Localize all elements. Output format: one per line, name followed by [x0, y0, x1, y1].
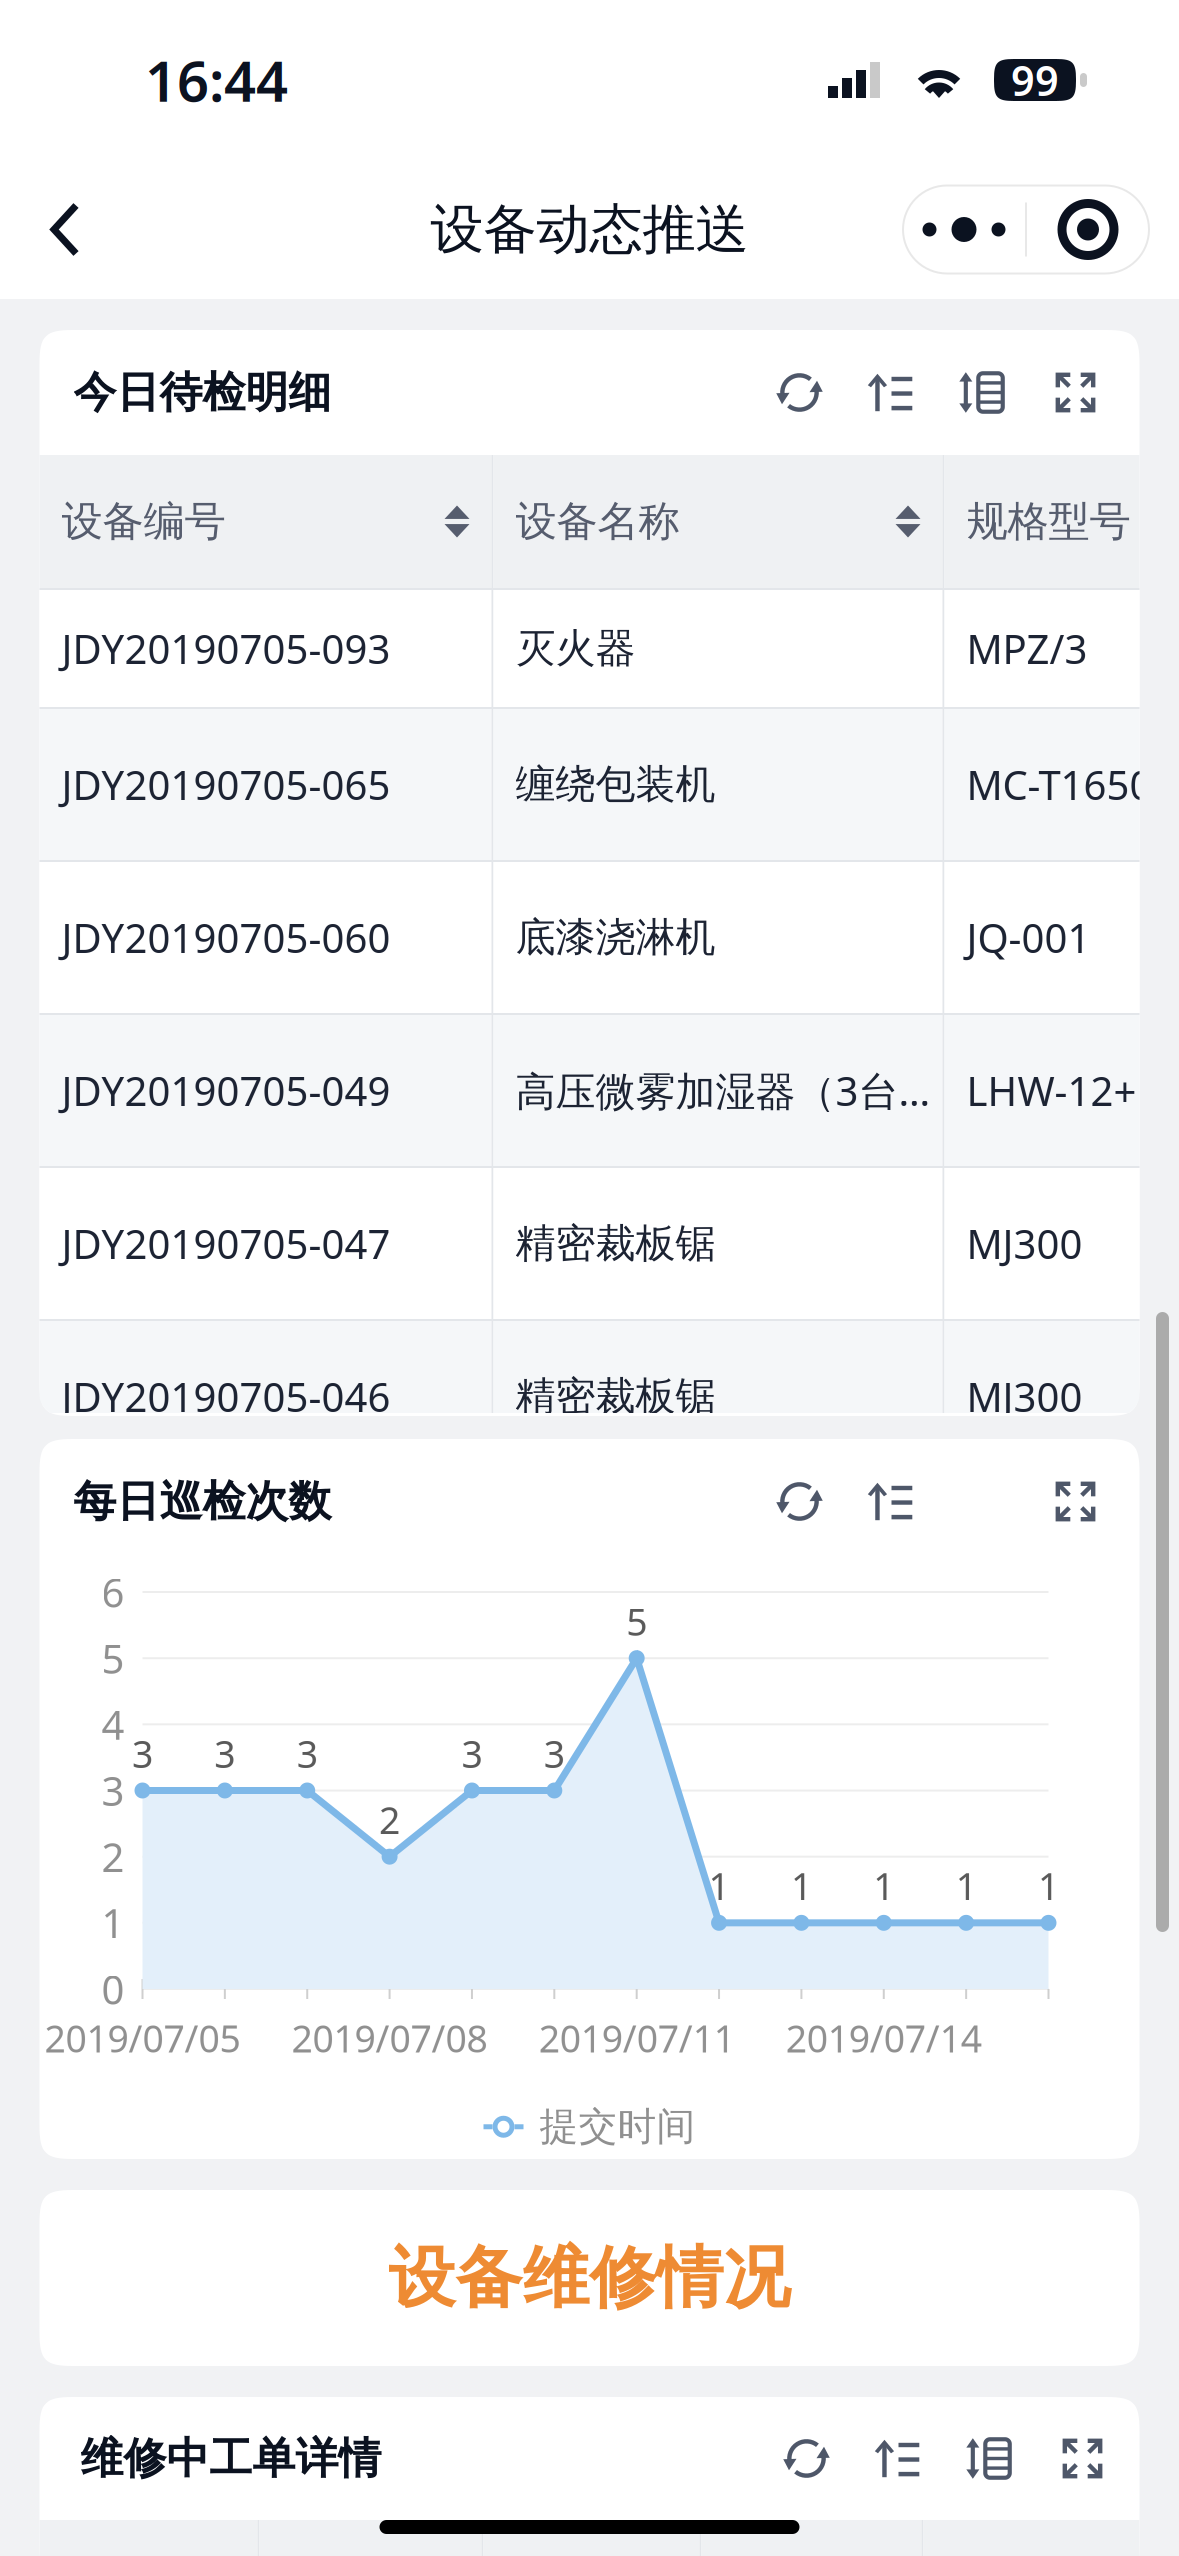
button[interactable]: Full screen — [1036, 2397, 1128, 2520]
staticText: 3 — [132, 1729, 153, 1778]
staticText: 1 — [101, 1896, 124, 1949]
button[interactable]: Refresh — [753, 330, 845, 455]
button[interactable]: Row height — [944, 2397, 1036, 2520]
staticText: 维修中工单详情 — [80, 2432, 381, 2485]
staticText: JQ-001 — [966, 911, 1090, 964]
staticText: JDY20190705-046 — [61, 1370, 390, 1423]
staticText: MPZ/3 — [966, 622, 1087, 675]
staticText: 2019/07/14 — [786, 2013, 982, 2063]
button[interactable]: Sort — [845, 1439, 937, 1564]
staticText: LHW-12+L — [966, 1064, 1157, 1117]
staticText: 16:44 — [145, 43, 288, 117]
staticText: 灭火器 — [515, 624, 635, 673]
button[interactable]: More options — [903, 185, 1025, 273]
staticText: 3 — [544, 1729, 565, 1778]
staticText: 2 — [101, 1830, 124, 1883]
staticText: 每日巡检次数 — [73, 1475, 331, 1528]
staticText: 2019/07/05 — [44, 2013, 240, 2063]
staticText: 1 — [873, 1861, 894, 1911]
staticText: 6 — [101, 1565, 124, 1618]
staticText: 设备动态推送 — [430, 197, 748, 262]
staticText: 提交时间 — [539, 2103, 695, 2150]
staticText: 2019/07/11 — [539, 2013, 735, 2063]
staticText: JDY20190705-047 — [61, 1217, 390, 1270]
staticText: MJ300 — [966, 1370, 1082, 1423]
button[interactable]: Full screen — [1029, 330, 1121, 455]
staticText: 精密裁板锯 — [515, 1219, 715, 1268]
staticText: JDY20190705-065 — [61, 758, 390, 811]
staticText: 2 — [379, 1795, 400, 1844]
staticText: 设备维修情况 — [388, 2237, 790, 2319]
button[interactable]: Refresh — [753, 1439, 845, 1564]
staticText: 3 — [461, 1729, 482, 1778]
staticText: 1 — [791, 1861, 812, 1911]
button[interactable]: Refresh — [760, 2397, 852, 2520]
staticText: 1 — [708, 1861, 729, 1911]
button[interactable]: Sort — [845, 330, 937, 455]
button[interactable]: Back — [0, 175, 112, 283]
staticText: 设备编号 — [61, 496, 225, 547]
staticText: 高压微雾加湿器（3台… — [515, 1064, 930, 1117]
staticText: 4 — [101, 1698, 124, 1751]
staticText: 3 — [101, 1764, 124, 1817]
staticText: 3 — [297, 1729, 318, 1778]
button[interactable]: Close mini program — [1027, 185, 1149, 273]
staticText: 底漆浇淋机 — [515, 913, 715, 962]
staticText: 5 — [626, 1596, 647, 1646]
staticText: 3 — [214, 1729, 235, 1778]
staticText: 99 — [1011, 53, 1059, 107]
staticText: 精密裁板锯 — [515, 1372, 715, 1421]
staticText: 5 — [101, 1632, 124, 1685]
staticText: 1 — [956, 1861, 977, 1911]
staticText: JDY20190705-049 — [61, 1064, 390, 1117]
staticText: 缠绕包装机 — [515, 760, 715, 809]
button[interactable]: Sort — [852, 2397, 944, 2520]
staticText: JDY20190705-060 — [61, 911, 390, 964]
staticText: 今日待检明细 — [73, 366, 331, 419]
button[interactable]: Row height — [937, 330, 1029, 455]
staticText: 规格型号 — [966, 496, 1130, 547]
staticText: MJ300 — [966, 1217, 1082, 1270]
staticText: MC-T1650 — [966, 758, 1152, 811]
staticText: 设备名称 — [515, 496, 679, 547]
staticText: 1 — [1038, 1861, 1059, 1911]
button[interactable]: Full screen — [1029, 1439, 1121, 1564]
staticText: 2019/07/08 — [292, 2013, 488, 2063]
staticText: JDY20190705-093 — [61, 622, 390, 675]
staticText: 0 — [101, 1962, 124, 2015]
